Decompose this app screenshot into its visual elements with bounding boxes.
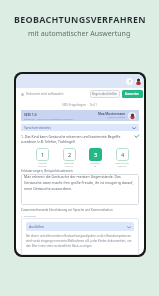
button[interactable]: Profil [135,78,142,85]
button[interactable]: Max erkennt die Geräusche der meisten Ge… [21,174,139,205]
button[interactable]: 4 [116,148,129,161]
staticText: trifft eher nicht zu [64,162,74,168]
staticText: Dokument wird aufbewahrt [26,92,64,96]
staticText: BEOBACHTUNGSVERFAHREN [14,13,146,25]
staticText: ? [129,79,131,84]
staticText: Max erkennt die Geräusche der meisten Ge… [24,174,136,191]
button[interactable]: 1 [36,148,49,161]
staticText: Zusammenfassende Einschätzung zur Sprach… [21,208,113,212]
button[interactable]: Auswerten [122,90,143,98]
staticText: SEIS-Fragebogen · Teil 1 [62,103,98,107]
staticText: Bogen abschließen [92,92,118,96]
button[interactable]: Hilfe [126,78,133,85]
button[interactable]: Ausfüllen [26,222,134,231]
staticText: SEIS 1-6 [24,112,37,117]
staticText: trifft gar nicht zu [38,162,47,168]
button[interactable]: 3 [89,148,102,161]
staticText: Erläuterungen, Beispielsituationen [21,169,73,173]
staticText: 1. Produktion [21,214,37,217]
staticText: mit automatischer Auswertung [28,29,131,39]
staticText: trifft voll und ganz zu [115,162,129,168]
staticText: Bogen B1 · 20.09.2023 Erzieherin Gruppe … [24,117,75,120]
staticText: 1. Das Kind kann Geräusche erkennen und … [21,134,133,144]
staticText: Max Mustermann [98,112,126,116]
staticText: trifft eher zu [90,162,100,168]
staticText: Sprachverständnis [24,126,51,130]
staticText: Bei dieser und allen anderen Beobachtung… [26,234,134,247]
staticText: 1 [41,151,45,158]
staticText: 3 [94,151,98,158]
staticText: 4 [121,151,125,158]
staticText: 2 [68,151,72,158]
staticText: Auswerten [125,92,140,96]
staticText: Ausfüllen [29,224,44,229]
button[interactable]: 2 [63,148,76,161]
button[interactable]: Bogen abschließen [90,90,120,98]
staticText: 4 Jahre 3 Monate [107,116,126,119]
